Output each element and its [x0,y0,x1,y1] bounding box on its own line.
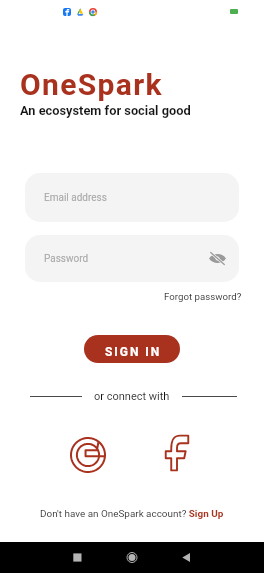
button[interactable]: Show password [209,251,226,266]
button[interactable]: SIGN IN [84,335,180,363]
staticText: SIGN IN [105,345,162,359]
button[interactable]: Sign in with Facebook [156,433,196,473]
staticText: Don't have an OneSpark account? Sign Up [40,508,224,520]
button[interactable]: Forgot password? [164,291,242,302]
staticText: OneSpark [20,67,163,102]
button[interactable]: Email address [25,173,239,222]
button[interactable]: Don't have an OneSpark account? Sign Up [0,505,264,523]
staticText: or connect with [94,390,170,403]
staticText: An ecosystem for social good [20,103,191,118]
button[interactable]: Sign in with Google [68,435,108,475]
staticText: Password [44,253,89,265]
staticText: Email address [44,192,107,204]
button[interactable]: Password [25,235,239,282]
